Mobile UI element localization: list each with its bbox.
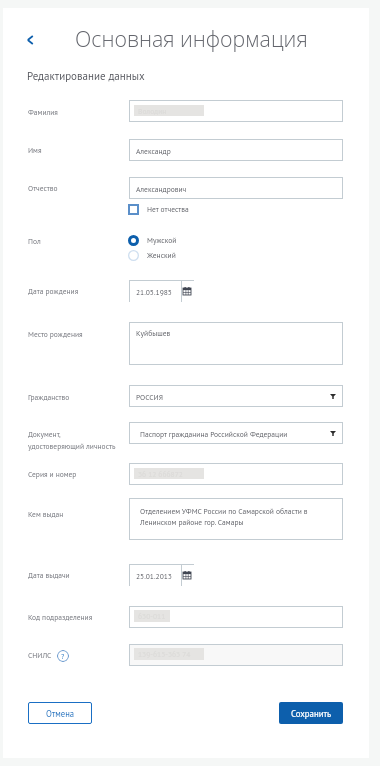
staticText: Кем выдан: [28, 509, 64, 519]
button[interactable]: Отмена: [28, 702, 92, 724]
button[interactable]: Володин: [129, 100, 343, 122]
staticText: Ленинском районе гор. Самары: [140, 517, 244, 527]
staticText: Пол: [28, 236, 41, 246]
staticText: Паспорт гражданина Российской Федерации: [140, 429, 288, 439]
staticText: Куйбышев: [136, 328, 171, 338]
staticText: РОССИЯ: [136, 392, 163, 402]
button[interactable]: 630-011: [129, 606, 343, 628]
staticText: Имя: [28, 145, 42, 155]
button[interactable]: РОССИЯ: [129, 385, 343, 407]
staticText: 25.01.2013: [136, 571, 172, 581]
staticText: Основная информация: [75, 24, 308, 53]
button[interactable]: Куйбышев: [129, 322, 343, 365]
button[interactable]: Женский: [128, 249, 168, 261]
button[interactable]: Help: [57, 650, 69, 662]
staticText: Отделением УФМС России по Самарской обла…: [140, 506, 308, 516]
button[interactable]: Back: [19, 29, 41, 51]
staticText: Сохранить: [291, 708, 332, 719]
staticText: Александрович: [136, 184, 187, 194]
staticText: Александр: [136, 146, 171, 156]
staticText: Мужской: [147, 235, 177, 245]
button[interactable]: 25.01.2013: [129, 564, 194, 586]
staticText: Женский: [147, 250, 176, 260]
button[interactable]: Александрович: [129, 177, 343, 199]
staticText: Документ,: [28, 429, 61, 439]
staticText: Нет отчества: [147, 204, 189, 214]
staticText: 21.05.1985: [136, 287, 172, 297]
button[interactable]: Александр: [129, 139, 343, 161]
button[interactable]: 36 12 666872: [129, 463, 343, 485]
staticText: СНИЛС: [28, 650, 52, 660]
staticText: Фамилия: [28, 107, 58, 117]
button[interactable]: 139-615-363 74: [129, 644, 343, 666]
staticText: Гражданство: [28, 392, 70, 402]
staticText: удостоверяющий личность: [28, 441, 116, 451]
button[interactable]: Нет отчества: [128, 203, 181, 215]
button[interactable]: Мужской: [128, 234, 169, 246]
staticText: Место рождения: [28, 329, 83, 339]
staticText: Дата рождения: [28, 286, 79, 296]
button[interactable]: Паспорт гражданина Российской Федерации: [129, 422, 343, 444]
staticText: Отчество: [28, 183, 58, 193]
staticText: ?: [61, 651, 65, 661]
staticText: Отмена: [46, 708, 75, 719]
button[interactable]: Отделением УФМС России по Самарской обла…: [129, 498, 343, 540]
staticText: Дата выдачи: [28, 570, 70, 580]
button[interactable]: Сохранить: [279, 702, 343, 724]
button[interactable]: 21.05.1985: [129, 280, 194, 302]
staticText: Редактирование данных: [27, 69, 145, 83]
staticText: Серия и номер: [28, 469, 77, 479]
staticText: Код подразделения: [28, 612, 93, 622]
